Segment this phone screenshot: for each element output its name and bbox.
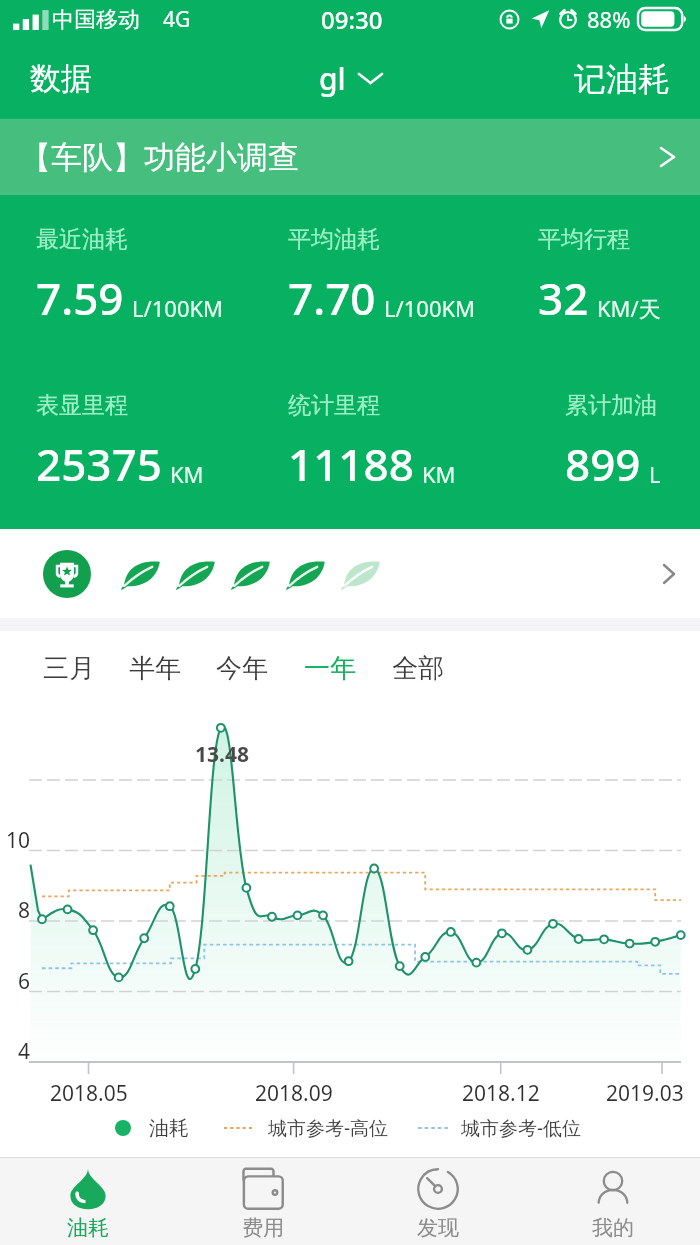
other: Rotation lock [499,9,520,30]
button[interactable]: 半年 [121,646,189,690]
button[interactable]: 费用 [175,1158,350,1245]
staticText: 88% [587,4,631,34]
staticText: gl [319,58,346,99]
staticText: 油耗 [149,1116,189,1141]
button[interactable]: 三月 [35,646,103,690]
staticText: 表显里程 [36,391,128,420]
staticText: 2019.03 [606,1079,684,1105]
button[interactable]: 一年 [296,646,364,690]
button[interactable]: 油耗 [0,1158,175,1245]
other: Battery 88 percent [638,8,686,30]
button[interactable]: gl [309,52,392,105]
button[interactable]: 我的 [525,1158,700,1245]
staticText: 09:30 [321,3,383,36]
staticText: 全部 [392,652,444,685]
staticText: 一年 [304,652,356,685]
button[interactable]: 记油耗 [560,51,700,107]
staticText: 11188 [288,434,414,494]
staticText: 平均行程 [538,225,630,254]
staticText: 25375 [36,434,162,494]
staticText: 统计里程 [288,391,380,420]
staticText: 899 [565,434,641,494]
staticText: 我的 [592,1215,634,1241]
button[interactable]: 【车队】功能小调查 [0,119,700,195]
other: Open survey [661,148,674,166]
staticText: 费用 [242,1215,284,1241]
staticText: 2018.05 [50,1079,128,1105]
staticText: 【车队】功能小调查 [20,138,299,177]
staticText: 32 [538,268,589,328]
staticText: 中国移动 [52,6,140,34]
staticText: 8 [18,896,31,920]
button[interactable]: 今年 [208,646,276,690]
staticText: 累计加油 [565,391,657,420]
staticText: 2018.09 [255,1079,333,1105]
staticText: 城市参考-低位 [461,1115,582,1141]
staticText: 半年 [129,652,181,685]
staticText: L [649,459,661,489]
staticText: 平均油耗 [288,225,380,254]
staticText: KM/天 [597,293,661,323]
other: Alarm [558,9,578,29]
staticText: KM [170,459,204,489]
staticText: 10 [6,826,31,850]
staticText: 4G [163,5,191,34]
button[interactable]: 油耗 [115,1115,582,1141]
staticText: KM [422,459,456,489]
staticText: L/100KM [132,293,224,323]
staticText: 13.48 [195,740,249,762]
staticText: 6 [18,967,31,991]
staticText: 发现 [417,1215,459,1241]
staticText: L/100KM [384,293,476,323]
staticText: 4 [18,1037,31,1061]
button[interactable]: 数据 [0,51,106,106]
staticText: 7.59 [36,268,124,328]
staticText: 三月 [43,652,95,685]
staticText: 7.70 [288,268,376,328]
staticText: 油耗 [67,1215,109,1241]
button[interactable]: 发现 [350,1158,525,1245]
button[interactable]: 全部 [384,646,452,690]
other: Location [529,8,551,30]
staticText: 今年 [216,652,268,685]
staticText: 2018.12 [462,1079,540,1105]
staticText: 城市参考-高位 [268,1115,389,1141]
staticText: 最近油耗 [36,225,128,254]
button[interactable] [0,529,700,618]
